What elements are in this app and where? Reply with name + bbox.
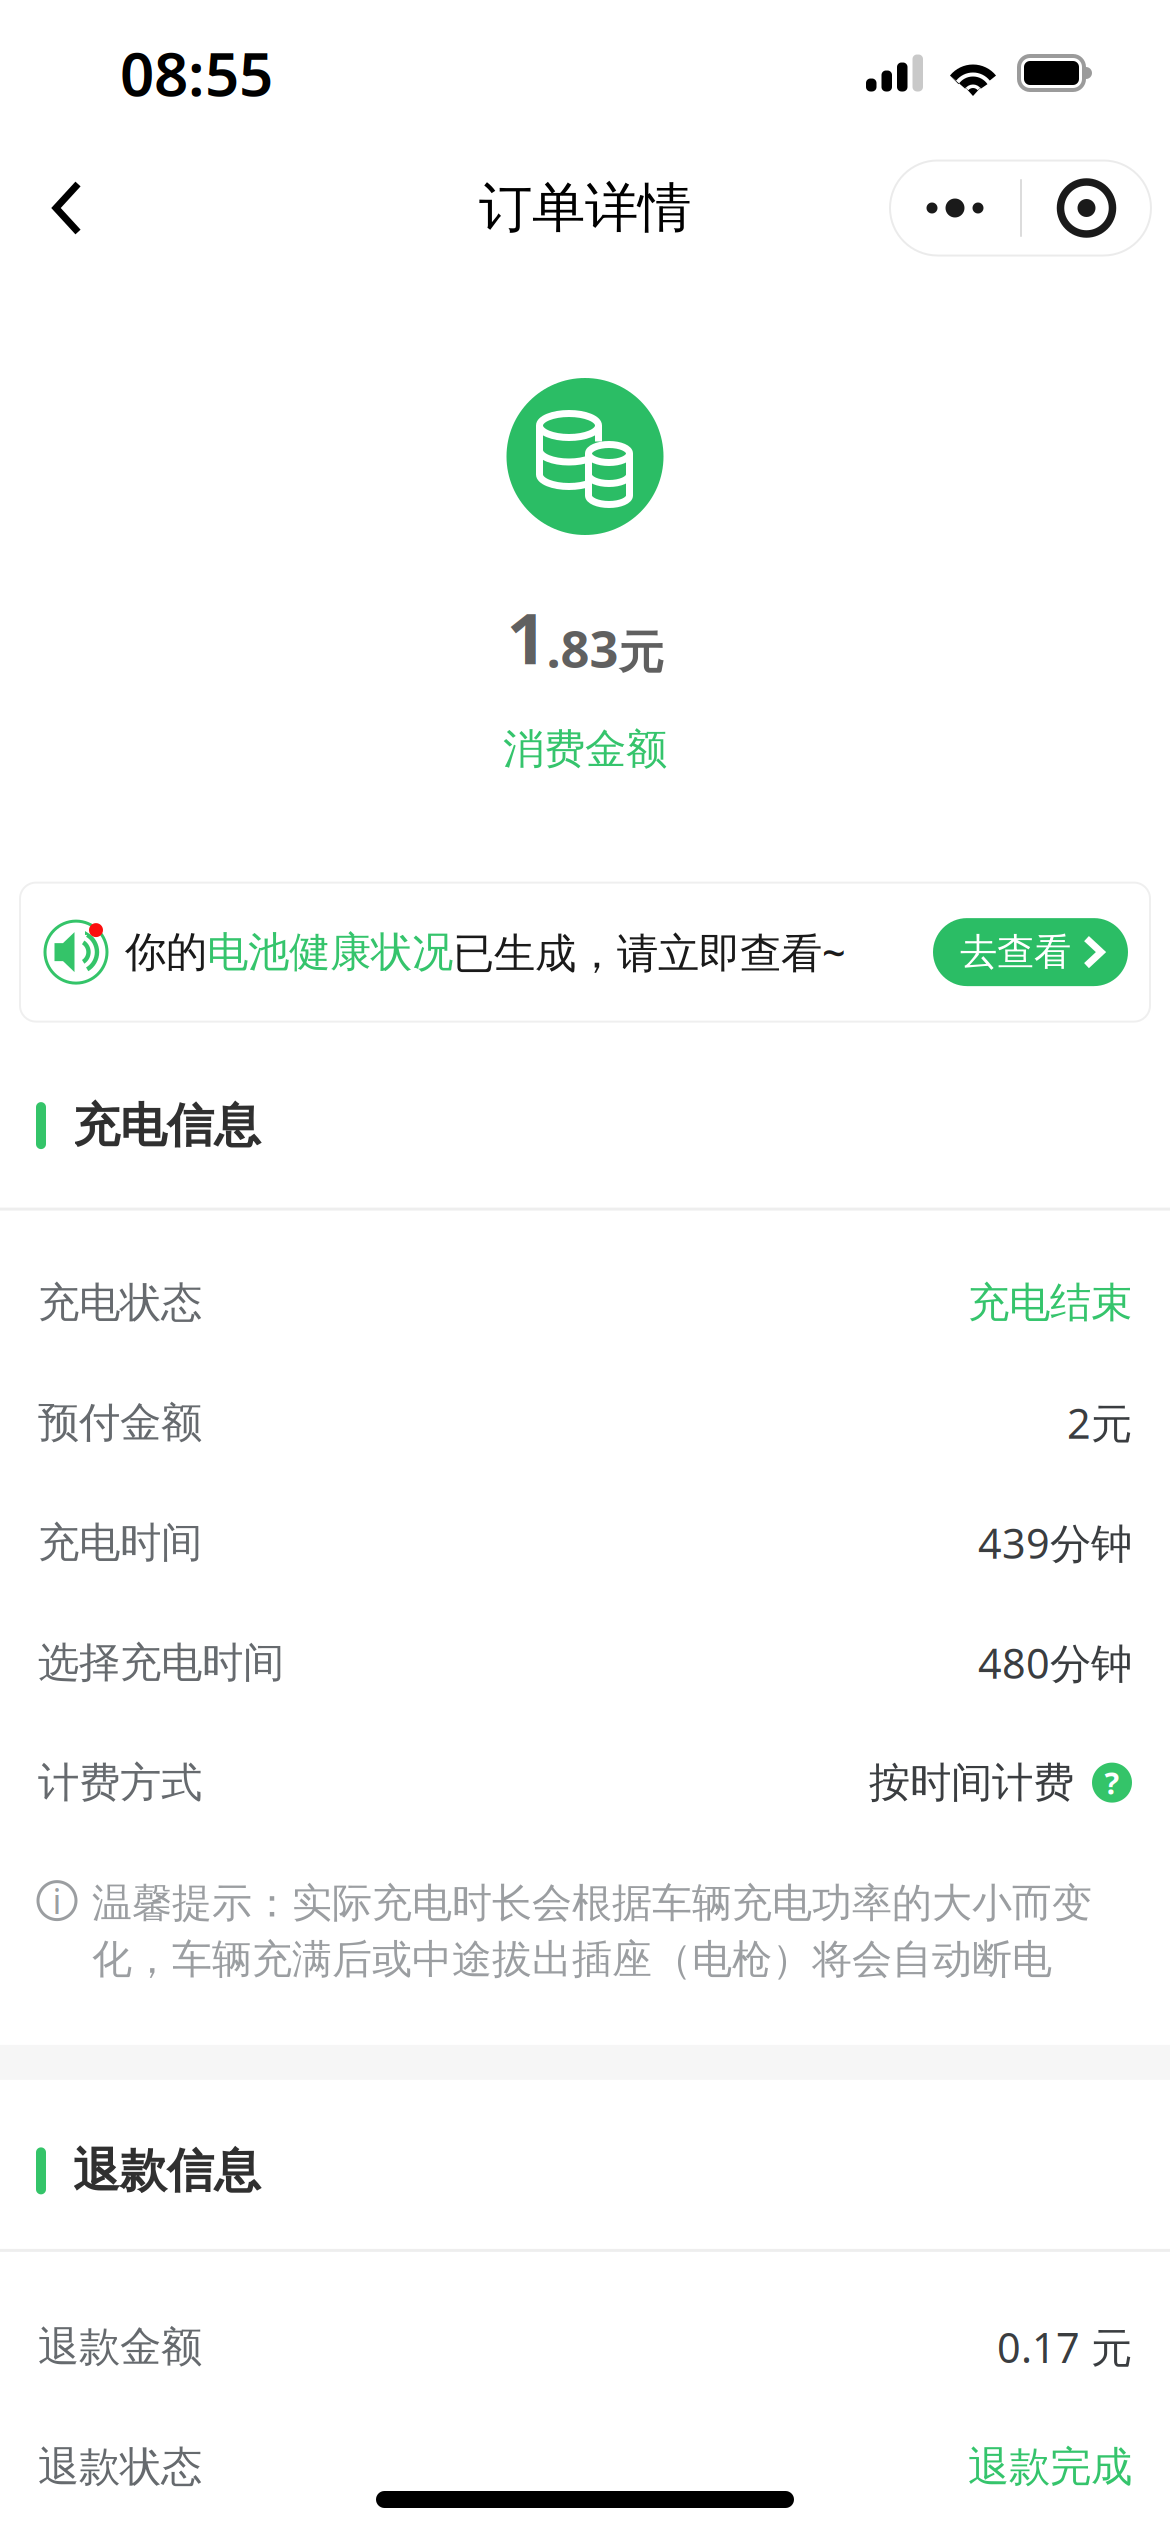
staticText: 充电结束 [968,1277,1132,1328]
staticText: 按时间计费 [869,1757,1074,1808]
staticText: 你的 [125,927,207,977]
staticText: 电池健康状况 [207,927,453,977]
staticText: 充电状态 [38,1277,202,1328]
button[interactable]: Close [1022,160,1151,255]
staticText: 08:55 [120,33,273,113]
button[interactable]: 你的 [20,883,1150,1022]
button[interactable]: Back [12,149,122,267]
staticText: 退款状态 [38,2441,202,2492]
staticText: ? [1104,1762,1119,1803]
staticText: 计费方式 [38,1757,202,1808]
staticText: 退款完成 [968,2441,1132,2492]
staticText: 已生成，请立即查看~ [453,925,846,980]
staticText: 充电时间 [38,1517,202,1568]
staticText: 2元 [1067,1395,1132,1450]
staticText: 1.83元 [506,590,663,684]
button[interactable]: More [890,160,1020,255]
staticText: 去查看 [960,929,1071,975]
staticText: 0.17 元 [997,2319,1132,2374]
staticText: 退款信息 [73,2142,261,2199]
staticText: i [52,1878,61,1924]
staticText: 480分钟 [978,1635,1132,1690]
staticText: 订单详情 [479,175,691,241]
staticText: 预付金额 [38,1397,202,1448]
staticText: 充电信息 [73,1097,261,1154]
staticText: 退款金额 [38,2321,202,2372]
staticText: 选择充电时间 [38,1637,284,1688]
staticText: 消费金额 [503,724,667,775]
staticText: 439分钟 [978,1515,1132,1570]
staticText: 温馨提示：实际充电时长会根据车辆充电功率的大小而变化，车辆充满后或中途拔出插座（… [92,1879,1092,1984]
